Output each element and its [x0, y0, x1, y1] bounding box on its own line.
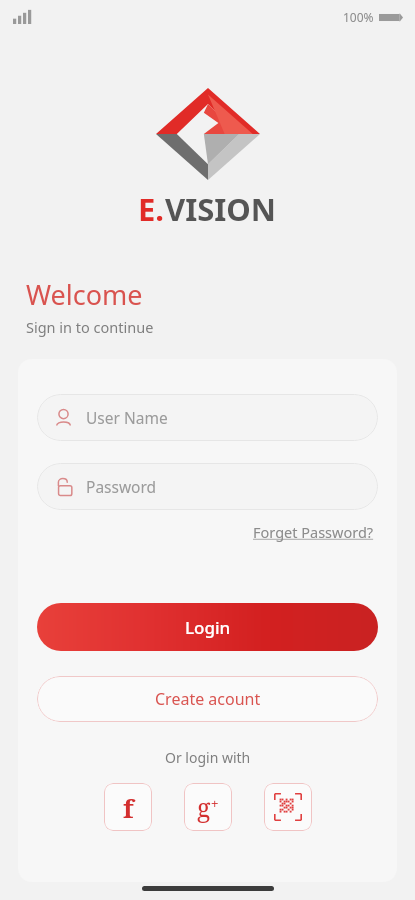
staticText: g: [197, 790, 211, 824]
button[interactable]: Sign in with Google: [184, 783, 232, 831]
staticText: Create acount: [155, 688, 261, 710]
staticText: Password: [86, 476, 157, 497]
button[interactable]: Create acount: [37, 676, 378, 722]
staticText: User Name: [86, 407, 168, 428]
staticText: f: [123, 790, 134, 825]
button[interactable]: Sign in with Facebook: [104, 783, 152, 831]
staticText: +: [211, 794, 219, 812]
staticText: 100%: [343, 9, 374, 25]
staticText: Sign in to continue: [26, 317, 154, 337]
button[interactable]: Sign in with QR code: [264, 783, 312, 831]
staticText: Or login with: [165, 748, 251, 767]
staticText: E.: [138, 188, 165, 230]
staticText: Welcome: [26, 276, 143, 313]
button[interactable]: Login: [37, 603, 378, 651]
button[interactable]: Password: [37, 463, 378, 510]
staticText: Forget Password?: [253, 522, 374, 542]
staticText: VISION: [165, 188, 277, 230]
staticText: Login: [185, 616, 231, 639]
button[interactable]: Forget Password?: [249, 518, 378, 546]
button[interactable]: User Name: [37, 394, 378, 441]
